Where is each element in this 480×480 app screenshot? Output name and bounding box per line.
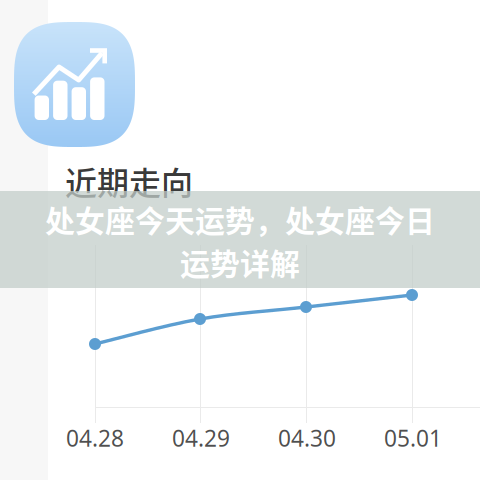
staticText: 04.30 [278,423,336,453]
staticText: 04.29 [172,423,230,453]
staticText: 近期走向 [65,158,193,204]
staticText: 04.28 [66,423,124,453]
staticText: 运势详解 [180,240,300,284]
staticText: 05.01 [384,423,442,453]
staticText: 处女座今天运势，处女座今日 [45,197,435,241]
